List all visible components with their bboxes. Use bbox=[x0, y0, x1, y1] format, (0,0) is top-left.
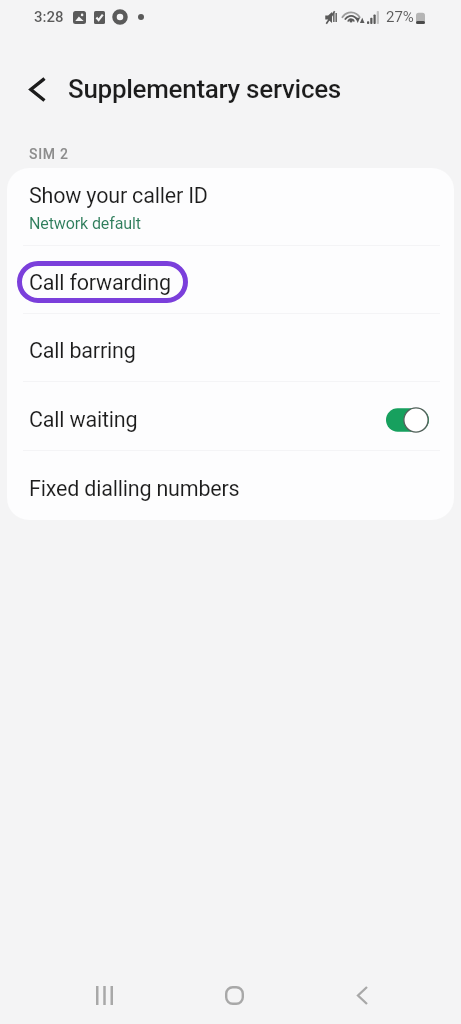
button[interactable]: Call waiting bbox=[7, 382, 454, 450]
button[interactable]: Navigate up bbox=[14, 66, 60, 112]
button[interactable]: Back bbox=[332, 965, 392, 1024]
button[interactable]: Home bbox=[204, 965, 264, 1024]
staticText: Show your caller ID bbox=[29, 183, 208, 208]
staticText: Network default bbox=[29, 214, 141, 233]
button[interactable]: Call barring bbox=[7, 314, 454, 381]
staticText: Call waiting bbox=[29, 407, 138, 432]
staticText: Call forwarding bbox=[29, 270, 171, 295]
staticText: 3:28 bbox=[34, 8, 64, 26]
button[interactable]: Recent apps bbox=[74, 965, 134, 1024]
staticText: Fixed dialling numbers bbox=[29, 476, 240, 501]
staticText: SIM 2 bbox=[29, 146, 69, 162]
staticText: Call barring bbox=[29, 338, 136, 363]
staticText: 27% bbox=[386, 8, 414, 26]
staticText: Supplementary services bbox=[68, 74, 342, 104]
button[interactable]: Call forwarding bbox=[7, 246, 454, 313]
button[interactable]: Show your caller ID bbox=[7, 168, 454, 245]
button[interactable]: Fixed dialling numbers bbox=[7, 451, 454, 520]
